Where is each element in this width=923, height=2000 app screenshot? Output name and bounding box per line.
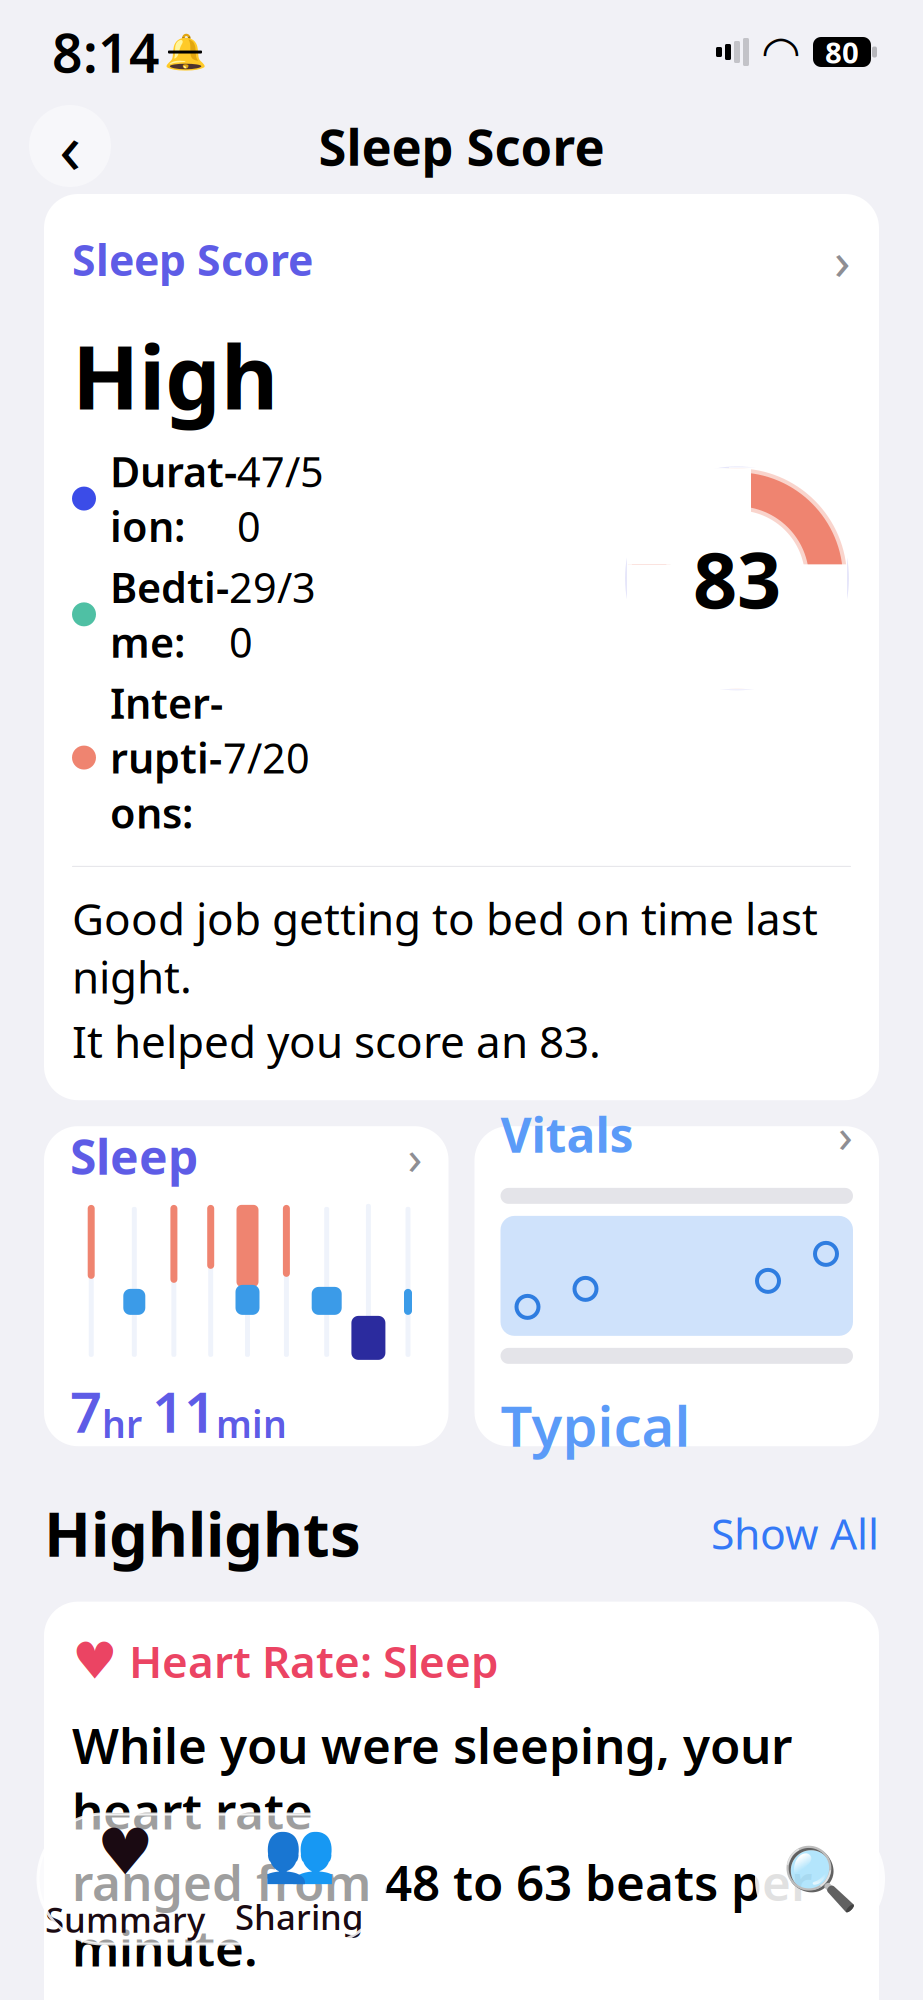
staticText: 83 — [693, 527, 781, 630]
staticText: Sleep Score — [72, 231, 313, 288]
staticText: Typical — [500, 1388, 690, 1462]
staticText: 11 — [152, 1374, 216, 1448]
staticText: ‹ — [59, 98, 81, 194]
staticText: › — [407, 1124, 422, 1188]
staticText: Interruptions: — [110, 675, 223, 840]
button[interactable]: Search — [755, 1814, 885, 1944]
staticText: Sharing — [235, 1893, 363, 1939]
staticText: 👥 — [262, 1818, 335, 1885]
staticText: Vitals — [500, 1102, 633, 1166]
button[interactable]: 👥 — [212, 1819, 386, 1939]
staticText: › — [838, 1102, 853, 1166]
staticText: ♥ — [96, 1816, 153, 1888]
staticText: High — [72, 317, 278, 434]
staticText: ranged from 48 to 63 beats per minute. — [72, 1849, 812, 1980]
staticText: Show All — [711, 1505, 879, 1561]
staticText: 🔍 — [782, 1844, 858, 1914]
staticText: Summary — [45, 1896, 205, 1942]
staticText: 80 — [825, 32, 859, 71]
staticText: 29/30 — [229, 559, 316, 669]
button[interactable]: Vitals — [474, 1126, 879, 1446]
staticText: min — [216, 1399, 287, 1448]
staticText: ♥ — [72, 1632, 117, 1690]
staticText: Bedtime: — [110, 559, 229, 669]
staticText: › — [834, 224, 851, 295]
staticText: Duration: — [110, 444, 237, 553]
button[interactable]: ♥ — [44, 1602, 879, 2000]
staticText: It helped you score an 83. — [72, 1012, 601, 1070]
staticText: ◠ — [763, 26, 798, 78]
staticText: Sleep Score — [318, 112, 604, 180]
staticText: 🔔 — [163, 32, 206, 72]
staticText: Highlights — [44, 1492, 361, 1574]
staticText: 8:14 — [52, 17, 160, 87]
staticText: Good job getting to bed on time last nig… — [72, 889, 818, 1006]
button[interactable]: Show All — [711, 1505, 879, 1561]
button[interactable]: Back — [29, 105, 111, 187]
button[interactable]: Sleep — [44, 1126, 448, 1446]
staticText: Heart Rate: Sleep — [129, 1632, 499, 1690]
staticText: 47/50 — [237, 444, 324, 553]
staticText: 7/20 — [223, 730, 310, 785]
button[interactable]: ♥ — [38, 1819, 212, 1939]
staticText: 7 — [70, 1374, 102, 1448]
staticText: Sleep — [70, 1124, 198, 1188]
staticText: hr — [102, 1399, 152, 1448]
button[interactable]: Sleep Score — [44, 194, 879, 1100]
staticText: While you were sleeping, your heart rate — [72, 1712, 792, 1843]
